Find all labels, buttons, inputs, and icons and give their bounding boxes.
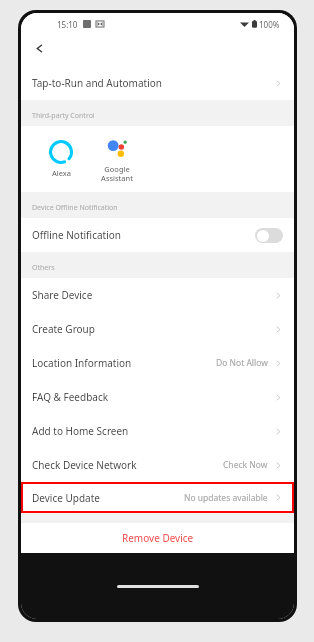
staticText: Device Update: [32, 491, 184, 505]
staticText: FAQ & Feedback: [32, 390, 274, 404]
staticText: Alexa: [52, 168, 71, 178]
button[interactable]: Back: [26, 35, 52, 61]
button[interactable]: Offline Notification toggle: [255, 228, 283, 243]
staticText: 15:10: [57, 19, 78, 30]
staticText: Others: [32, 263, 55, 273]
staticText: Check Now: [223, 459, 268, 471]
button[interactable]: Create Group: [21, 312, 294, 346]
staticText: Location Information: [32, 356, 216, 370]
button[interactable]: Google Assistant: [89, 136, 145, 183]
staticText: Device Offline Notification: [32, 203, 118, 213]
button[interactable]: Device Update: [21, 482, 294, 513]
staticText: No updates available: [184, 492, 268, 504]
button[interactable]: Tap-to-Run and Automation: [21, 66, 294, 100]
staticText: 100%: [259, 19, 280, 30]
staticText: Do Not Allow: [216, 357, 268, 369]
button[interactable]: Share Device: [21, 278, 294, 312]
staticText: Check Device Network: [32, 458, 223, 472]
button[interactable]: Alexa: [33, 140, 89, 178]
button[interactable]: Location Information: [21, 346, 294, 380]
staticText: Tap-to-Run and Automation: [32, 76, 274, 90]
staticText: Share Device: [32, 288, 274, 302]
button[interactable]: FAQ & Feedback: [21, 380, 294, 414]
staticText: Remove Device: [122, 531, 194, 545]
staticText: Add to Home Screen: [32, 424, 274, 438]
button[interactable]: Offline Notification: [21, 218, 294, 252]
staticText: Third-party Control: [32, 111, 95, 121]
button[interactable]: Add to Home Screen: [21, 414, 294, 448]
button[interactable]: Check Device Network: [21, 448, 294, 482]
staticText: Create Group: [32, 322, 274, 336]
staticText: Offline Notification: [32, 228, 255, 242]
button[interactable]: Remove Device: [21, 523, 294, 553]
staticText: Google Assistant: [101, 164, 133, 183]
